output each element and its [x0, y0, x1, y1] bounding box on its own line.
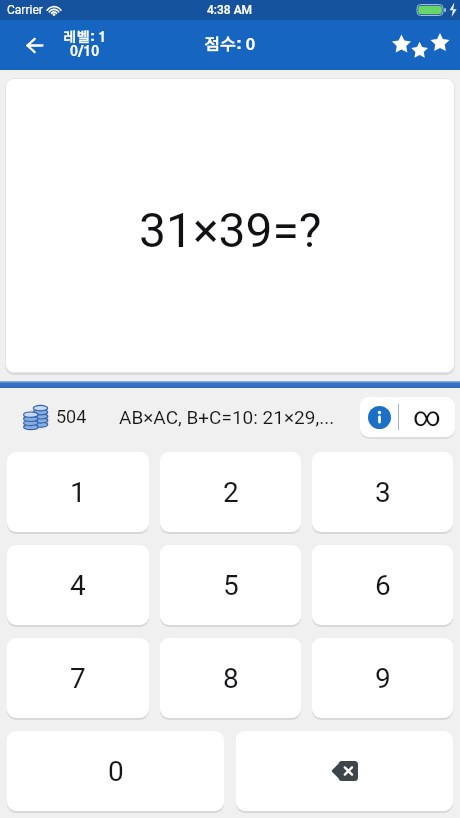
staticText: 2 — [223, 476, 239, 509]
button[interactable]: 1 — [7, 452, 149, 532]
staticText: 점수: 0 — [204, 37, 256, 53]
staticText: 6 — [375, 569, 391, 602]
button[interactable]: ∞ — [399, 397, 455, 437]
staticText: 31×39=? — [139, 202, 322, 258]
button[interactable]: 3 — [312, 452, 453, 532]
staticText: 9 — [375, 662, 391, 695]
button[interactable]: 7 — [7, 638, 149, 718]
staticText: 5 — [223, 569, 239, 602]
button[interactable]: 5 — [160, 545, 301, 625]
staticText: 1 — [70, 476, 86, 509]
staticText: 504 — [56, 406, 87, 427]
button[interactable]: 9 — [312, 638, 453, 718]
button[interactable]: 8 — [160, 638, 301, 718]
staticText: 7 — [70, 662, 86, 695]
staticText: Carrier — [7, 3, 43, 17]
staticText: 4 — [70, 569, 86, 602]
staticText: 레벨: 1 — [63, 31, 107, 45]
button[interactable] — [18, 29, 50, 61]
button[interactable] — [360, 397, 398, 437]
button[interactable]: 2 — [160, 452, 301, 532]
staticText: 8 — [223, 662, 239, 695]
staticText: 4:38 AM — [207, 3, 253, 17]
button[interactable]: 0 — [7, 731, 224, 811]
button[interactable] — [236, 731, 453, 811]
button[interactable]: AB×AC, B+C=10: 21×29,... — [119, 406, 335, 428]
staticText: 3 — [375, 476, 391, 509]
staticText: 0 — [108, 755, 124, 788]
staticText: 0/10 — [70, 45, 100, 59]
button[interactable]: 4 — [7, 545, 149, 625]
staticText: ∞ — [413, 401, 441, 433]
button[interactable]: 6 — [312, 545, 453, 625]
